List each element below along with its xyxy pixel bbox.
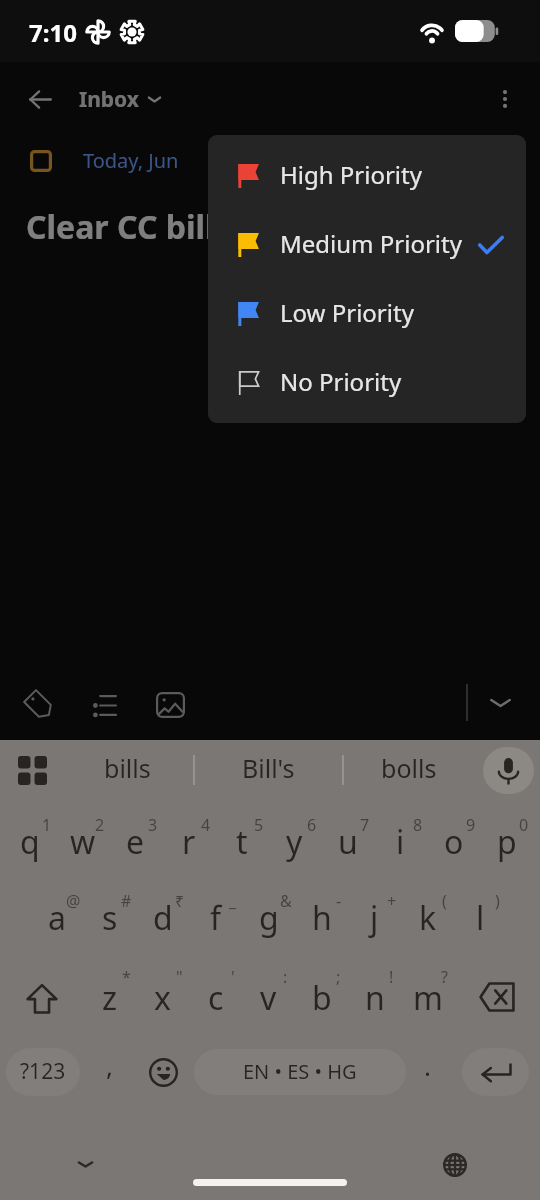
button[interactable]: b xyxy=(295,971,348,1039)
staticText: k xyxy=(419,896,437,940)
button[interactable]: u xyxy=(321,819,374,879)
staticText: a xyxy=(48,896,66,940)
staticText: # xyxy=(121,890,132,912)
button[interactable]: e xyxy=(109,819,162,879)
staticText: Today, Jun xyxy=(83,147,179,174)
staticText: r xyxy=(182,820,196,864)
button[interactable]: s xyxy=(83,895,136,955)
button[interactable]: Add label xyxy=(17,683,61,727)
staticText: & xyxy=(280,890,292,912)
staticText: Clear CC bill xyxy=(26,205,215,249)
button[interactable]: Low Priority xyxy=(208,279,526,348)
button[interactable]: k xyxy=(401,895,454,955)
staticText: y xyxy=(286,820,303,864)
button[interactable]: t xyxy=(215,819,268,879)
button[interactable]: Backspace xyxy=(457,965,540,1045)
staticText: v xyxy=(260,976,277,1020)
staticText: Medium Priority xyxy=(280,227,462,260)
button[interactable]: q xyxy=(3,819,56,879)
staticText: t xyxy=(236,820,248,864)
button[interactable]: o xyxy=(427,819,480,879)
staticText: p xyxy=(497,820,517,864)
staticText: n xyxy=(365,976,385,1020)
staticText: j xyxy=(370,896,379,940)
staticText: ) xyxy=(495,890,500,912)
button[interactable]: m xyxy=(401,971,454,1039)
button[interactable]: Collapse xyxy=(478,681,522,725)
button[interactable]: . xyxy=(406,1048,448,1096)
button[interactable]: h xyxy=(295,895,348,955)
staticText: ! xyxy=(389,966,394,988)
staticText: 4 xyxy=(201,814,211,836)
button[interactable]: , xyxy=(86,1048,132,1096)
staticText: ' xyxy=(231,966,235,988)
staticText: High Priority xyxy=(280,158,422,191)
button[interactable]: v xyxy=(242,971,295,1039)
button[interactable]: Keyboard settings xyxy=(10,748,55,793)
staticText: 6 xyxy=(307,814,317,836)
button[interactable]: l xyxy=(454,895,507,955)
button[interactable]: Bill's xyxy=(223,748,314,792)
button[interactable]: d xyxy=(136,895,189,955)
staticText: " xyxy=(176,966,183,988)
staticText: 5 xyxy=(254,814,264,836)
staticText: EN • ES • HG xyxy=(243,1058,357,1085)
staticText: e xyxy=(126,820,145,864)
button[interactable]: Enter xyxy=(462,1048,529,1096)
staticText: , xyxy=(106,1048,113,1083)
staticText: 7 xyxy=(360,814,370,836)
staticText: 7:10 xyxy=(29,16,77,49)
staticText: x xyxy=(154,976,171,1020)
button[interactable]: z xyxy=(83,971,136,1039)
button[interactable]: x xyxy=(136,971,189,1039)
staticText: - xyxy=(336,890,342,912)
staticText: b xyxy=(312,976,332,1020)
staticText: o xyxy=(444,820,464,864)
button[interactable]: More options xyxy=(485,79,525,119)
button[interactable]: Hide keyboard xyxy=(62,1141,108,1187)
staticText: Low Priority xyxy=(280,296,414,329)
button[interactable]: Medium Priority xyxy=(208,210,526,279)
staticText: ?123 xyxy=(20,1057,66,1086)
staticText: Inbox xyxy=(79,85,139,114)
button[interactable]: i xyxy=(374,819,427,879)
staticText: 2 xyxy=(95,814,105,836)
staticText: ₹ xyxy=(175,890,185,912)
button[interactable]: Checklist xyxy=(83,683,127,727)
staticText: f xyxy=(210,896,222,940)
button[interactable]: Voice input xyxy=(483,747,534,794)
button[interactable]: y xyxy=(268,819,321,879)
staticText: Bill's xyxy=(242,751,295,785)
button[interactable]: EN • ES • HG xyxy=(194,1049,406,1095)
button[interactable]: p xyxy=(480,819,533,879)
button[interactable]: High Priority xyxy=(208,141,526,210)
button[interactable]: Shift xyxy=(0,965,83,1045)
button[interactable]: j xyxy=(348,895,401,955)
button[interactable]: f xyxy=(189,895,242,955)
button[interactable]: w xyxy=(56,819,109,879)
staticText: q xyxy=(20,820,40,864)
staticText: 0 xyxy=(519,814,529,836)
staticText: i xyxy=(396,820,405,864)
button[interactable]: No Priority xyxy=(208,348,526,417)
staticText: s xyxy=(102,896,118,940)
button[interactable]: r xyxy=(162,819,215,879)
button[interactable]: Inbox xyxy=(79,80,165,118)
button[interactable]: bills xyxy=(82,748,173,792)
button[interactable]: a xyxy=(30,895,83,955)
button[interactable]: ?123 xyxy=(6,1048,80,1096)
staticText: w xyxy=(70,820,96,864)
staticText: h xyxy=(312,896,332,940)
button[interactable]: bolls xyxy=(363,748,454,792)
button[interactable]: Back xyxy=(20,79,60,119)
staticText: bolls xyxy=(381,751,437,785)
staticText: 1 xyxy=(42,814,52,836)
button[interactable]: c xyxy=(189,971,242,1039)
button[interactable]: Emoji xyxy=(140,1048,186,1096)
button[interactable]: Change language xyxy=(432,1142,478,1188)
staticText: : xyxy=(283,966,288,988)
staticText: c xyxy=(208,976,224,1020)
button[interactable]: g xyxy=(242,895,295,955)
button[interactable]: n xyxy=(348,971,401,1039)
button[interactable]: Insert image xyxy=(148,683,192,727)
